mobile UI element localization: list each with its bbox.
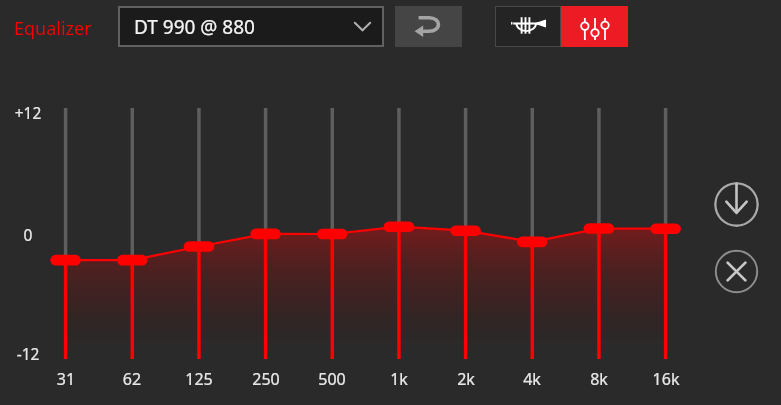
button[interactable]: DT 990 @ 880 (120, 8, 382, 45)
staticText: 125 (169, 368, 229, 405)
staticText: 16k (636, 368, 696, 405)
staticText: +12 (0, 102, 58, 405)
staticText: -12 (0, 343, 58, 405)
button[interactable]: Undo (395, 6, 462, 47)
staticText: 1k (369, 368, 429, 405)
staticText: 250 (236, 368, 296, 405)
staticText: 62 (102, 368, 162, 405)
staticText: 2k (436, 368, 496, 405)
staticText: 0 (0, 224, 58, 405)
button[interactable]: Close (714, 249, 759, 294)
button[interactable]: Equalizer (14, 16, 92, 41)
button[interactable]: Download preset (714, 182, 759, 227)
staticText: Equalizer (14, 16, 92, 41)
staticText: 8k (569, 368, 629, 405)
button[interactable]: Equalizer settings (561, 6, 628, 47)
staticText: DT 990 @ 880 (134, 14, 255, 40)
staticText: 500 (302, 368, 362, 405)
staticText: 31 (36, 368, 96, 405)
staticText: 4k (502, 368, 562, 405)
button[interactable]: Instruments (495, 6, 561, 47)
